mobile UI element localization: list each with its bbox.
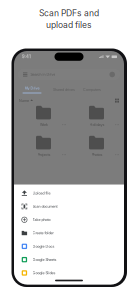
- button[interactable]: Google Slides: [14, 266, 124, 280]
- staticText: Create folder: [32, 231, 53, 235]
- staticText: Photos: [92, 153, 103, 157]
- staticText: Take photo: [32, 218, 50, 222]
- button[interactable]: Work: [18, 106, 69, 134]
- staticText: Google Docs: [32, 244, 54, 249]
- staticText: Scan PDFs and: [39, 8, 99, 18]
- staticText: Holidays: [90, 123, 105, 127]
- staticText: Google Slides: [32, 271, 55, 275]
- staticText: Upload file: [32, 191, 50, 195]
- staticText: My Drive: [24, 86, 39, 90]
- staticText: Work: [40, 123, 48, 127]
- staticText: Shared drives: [53, 87, 75, 92]
- button[interactable]: Scan document: [14, 200, 124, 213]
- staticText: Scan document: [32, 204, 57, 209]
- button[interactable]: Google Docs: [14, 240, 124, 253]
- staticText: Google Sheets: [32, 257, 56, 262]
- button[interactable]: Projects: [18, 136, 69, 164]
- staticText: Search in Drive: [30, 72, 55, 77]
- staticText: upload files: [46, 20, 92, 30]
- button[interactable]: Take photo: [14, 213, 124, 226]
- staticText: Computers: [83, 87, 101, 92]
- button[interactable]: Upload file: [14, 186, 124, 200]
- button[interactable]: Google Sheets: [14, 253, 124, 266]
- button[interactable]: Holidays: [71, 106, 122, 134]
- staticText: Projects: [38, 153, 51, 157]
- staticText: Name: [19, 98, 29, 103]
- staticText: 9:41: [22, 54, 31, 59]
- button[interactable]: Photos: [71, 136, 122, 164]
- button[interactable]: Create folder: [14, 226, 124, 240]
